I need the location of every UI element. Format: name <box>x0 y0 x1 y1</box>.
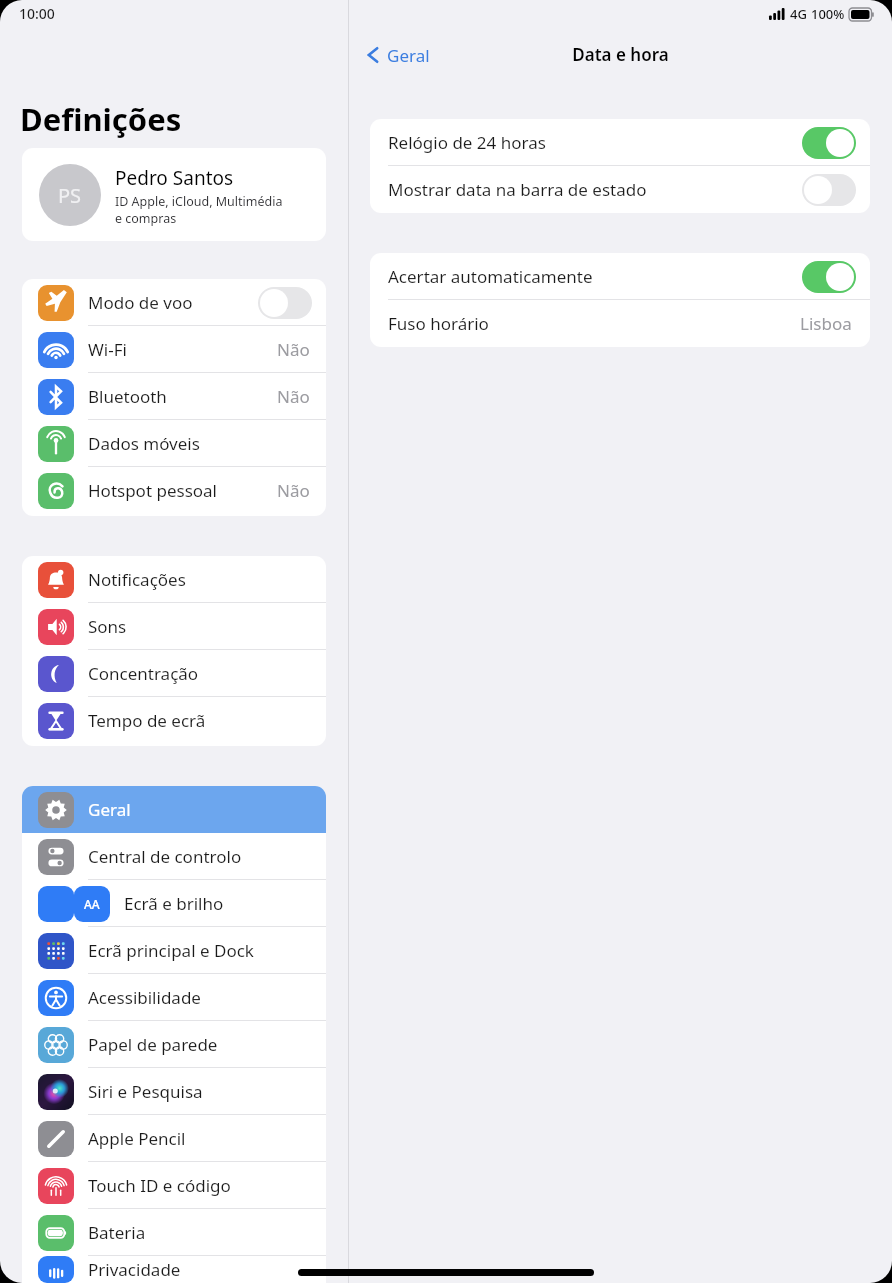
staticText: Central de controlo <box>88 845 242 868</box>
staticText: Acessibilidade <box>88 986 201 1009</box>
button[interactable]: PS <box>22 148 326 241</box>
button[interactable]: Privacidade <box>22 1256 326 1283</box>
staticText: Siri e Pesquisa <box>88 1080 203 1103</box>
staticText: Tempo de ecrã <box>88 709 206 732</box>
staticText: Sons <box>88 615 127 638</box>
staticText: Bluetooth <box>88 385 167 408</box>
button[interactable]: Bateria <box>22 1209 326 1256</box>
button[interactable]: Geral <box>22 786 326 833</box>
staticText: Notificações <box>88 568 186 591</box>
button[interactable]: Mostrar data na barra de estado <box>370 166 870 213</box>
staticText: Modo de voo <box>88 291 193 314</box>
staticText: Não <box>277 338 310 361</box>
staticText: Concentração <box>88 662 199 685</box>
staticText: Data e hora <box>349 43 892 66</box>
staticText: Relógio de 24 horas <box>388 131 546 154</box>
button[interactable]: Wi-Fi <box>22 326 326 373</box>
staticText: Mostrar data na barra de estado <box>388 178 647 201</box>
staticText: Apple Pencil <box>88 1127 186 1150</box>
button[interactable]: Ecrã principal e Dock <box>22 927 326 974</box>
button[interactable]: Notificações <box>22 556 326 603</box>
staticText: Privacidade <box>88 1258 181 1281</box>
button[interactable]: Ligado <box>802 127 856 159</box>
button[interactable]: Desligado <box>258 287 312 319</box>
staticText: Acertar automaticamente <box>388 265 593 288</box>
staticText: AA <box>84 896 100 912</box>
button[interactable]: Relógio de 24 horas <box>370 119 870 166</box>
staticText: Touch ID e código <box>88 1174 231 1197</box>
staticText: Lisboa <box>800 312 852 335</box>
button[interactable]: Bluetooth <box>22 373 326 420</box>
staticText: Não <box>277 479 310 502</box>
staticText: Wi-Fi <box>88 338 127 361</box>
button[interactable]: AA <box>22 880 326 927</box>
button[interactable]: Acertar automaticamente <box>370 253 870 300</box>
staticText: Dados móveis <box>88 432 200 455</box>
staticText: Bateria <box>88 1221 146 1244</box>
button[interactable]: Ligado <box>802 261 856 293</box>
staticText: ID Apple, iCloud, Multimédia e compras <box>115 193 283 226</box>
staticText: Papel de parede <box>88 1033 218 1056</box>
staticText: Geral <box>88 798 131 821</box>
staticText: Pedro Santos <box>115 165 234 191</box>
button[interactable]: Papel de parede <box>22 1021 326 1068</box>
staticText: Hotspot pessoal <box>88 479 217 502</box>
button[interactable]: Tempo de ecrã <box>22 697 326 744</box>
staticText: 4G <box>790 5 807 23</box>
staticText: Fuso horário <box>388 312 489 335</box>
button[interactable]: Apple Pencil <box>22 1115 326 1162</box>
button[interactable]: Sons <box>22 603 326 650</box>
staticText: Não <box>277 385 310 408</box>
button[interactable]: Dados móveis <box>22 420 326 467</box>
staticText: Definições <box>20 98 182 140</box>
button[interactable]: Desligado <box>802 174 856 206</box>
button[interactable]: Fuso horário <box>370 300 870 347</box>
button[interactable]: Central de controlo <box>22 833 326 880</box>
staticText: PS <box>58 182 82 209</box>
button[interactable]: Acessibilidade <box>22 974 326 1021</box>
staticText: Ecrã e brilho <box>124 892 224 915</box>
staticText: 10:00 <box>19 4 55 23</box>
button[interactable]: Siri e Pesquisa <box>22 1068 326 1115</box>
staticText: 100% <box>811 5 845 23</box>
button[interactable]: Concentração <box>22 650 326 697</box>
staticText: Geral <box>387 44 430 67</box>
button[interactable]: Geral <box>365 41 432 69</box>
button[interactable]: Hotspot pessoal <box>22 467 326 514</box>
button[interactable]: Modo de voo <box>22 279 326 326</box>
button[interactable]: Touch ID e código <box>22 1162 326 1209</box>
staticText: Ecrã principal e Dock <box>88 939 254 962</box>
